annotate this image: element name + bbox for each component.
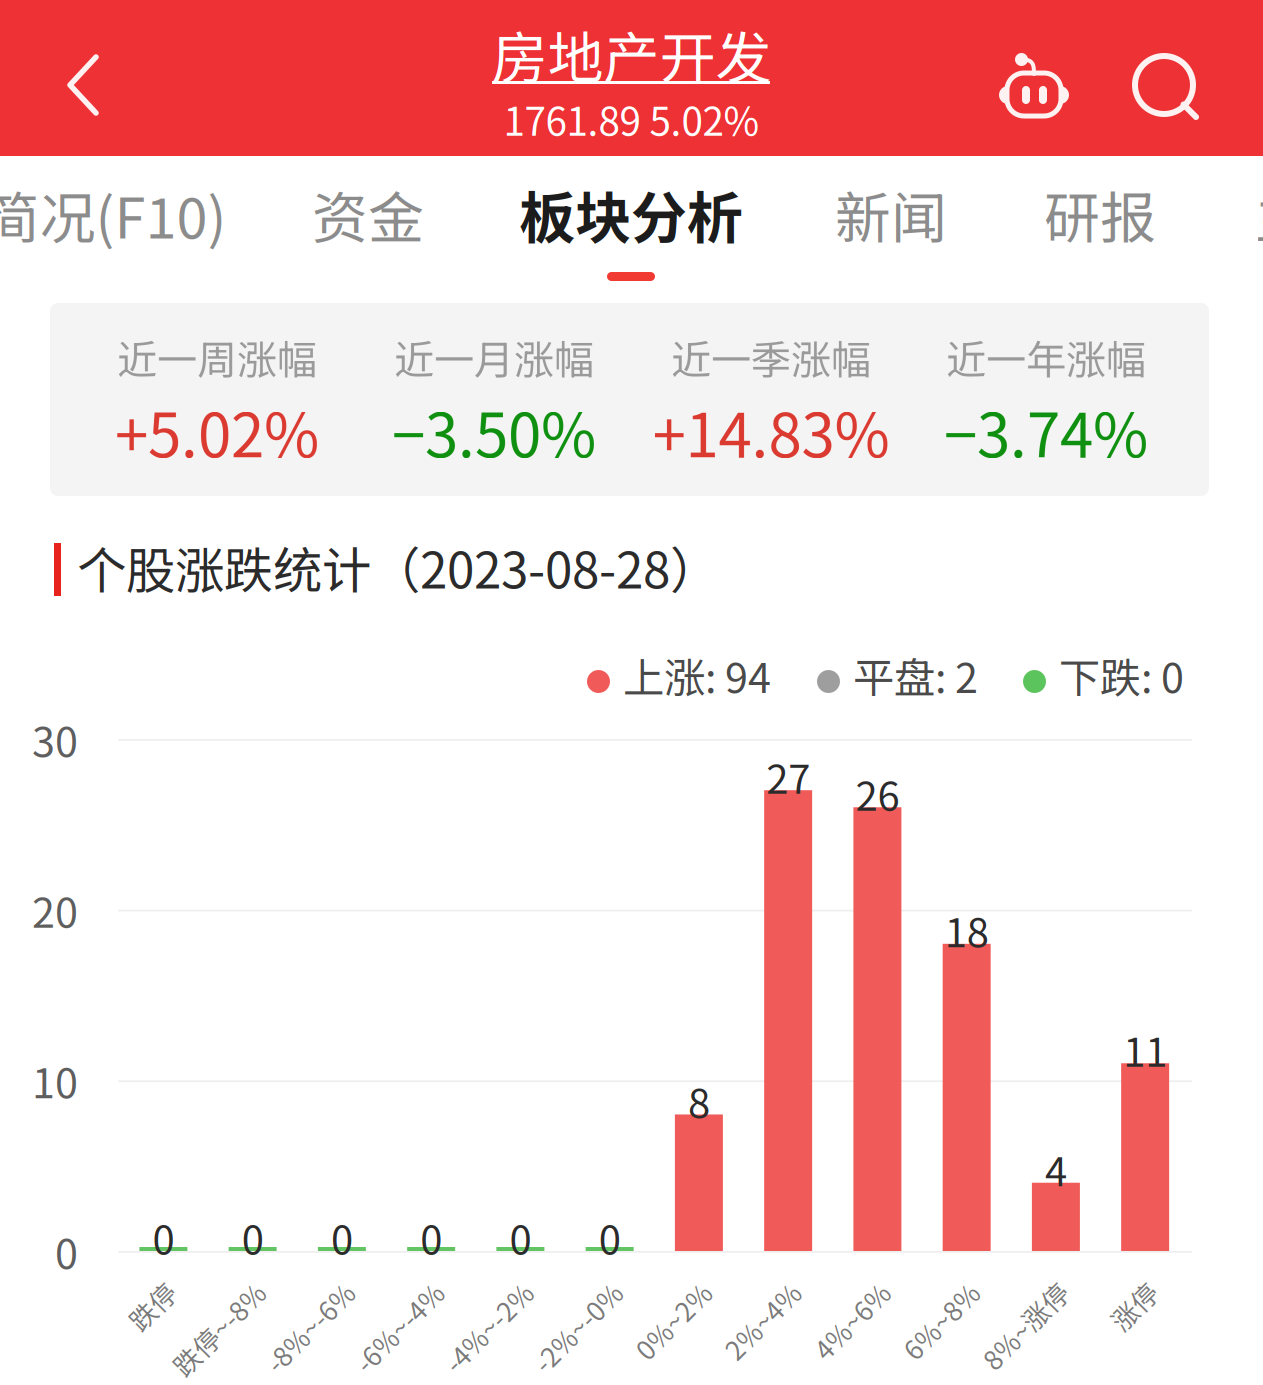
staticText: 0 [509, 1208, 531, 1266]
staticText: -4%~-2% [405, 1272, 518, 1310]
staticText: 近一周涨幅 [117, 328, 317, 386]
staticText: 10 [32, 1050, 78, 1110]
staticText: 下跌: 0 [1059, 645, 1184, 705]
button[interactable]: 简况(F10) [0, 156, 250, 301]
staticText: 上涨: 94 [623, 645, 771, 705]
button[interactable]: 主 [1198, 156, 1263, 301]
staticText: 30 [32, 709, 78, 769]
staticText: 资金 [312, 173, 424, 255]
staticText: 近一年涨幅 [946, 328, 1146, 386]
staticText: 0 [152, 1208, 174, 1266]
staticText: 主 [1255, 173, 1263, 255]
staticText: 6%~8% [870, 1272, 965, 1310]
staticText: 2%~4% [691, 1272, 786, 1310]
staticText: 4%~6% [780, 1272, 875, 1310]
staticText: 0%~2% [602, 1272, 697, 1310]
staticText: −3.74% [944, 388, 1148, 474]
staticText: 27 [766, 747, 810, 805]
staticText: 近一月涨幅 [394, 328, 594, 386]
button[interactable]: Search [1135, 56, 1199, 120]
staticText: 8%~涨停 [945, 1272, 1054, 1310]
staticText: 板块分析 [519, 173, 743, 255]
staticText: 房地产开发 [491, 13, 771, 95]
staticText: -2%~-0% [495, 1272, 608, 1310]
button[interactable]: 板块分析 [471, 156, 791, 301]
staticText: 20 [32, 880, 78, 940]
staticText: 1761.89 5.02% [503, 91, 759, 147]
staticText: 0 [331, 1208, 353, 1266]
staticText: 4 [1045, 1140, 1067, 1198]
staticText: 近一季涨幅 [671, 328, 871, 386]
staticText: 0 [55, 1221, 78, 1281]
staticText: 平盘: 2 [853, 645, 978, 705]
staticText: 新闻 [835, 173, 947, 255]
staticText: −3.50% [392, 388, 596, 474]
staticText: 11 [1123, 1020, 1167, 1078]
button[interactable]: Back [20, 22, 140, 152]
staticText: 0 [242, 1208, 264, 1266]
button[interactable]: 资金 [263, 156, 473, 301]
staticText: 跌停 [107, 1272, 161, 1310]
staticText: -8%~-6% [227, 1272, 340, 1310]
button[interactable]: 新闻 [786, 156, 996, 301]
staticText: 0 [420, 1208, 442, 1266]
staticText: +14.83% [652, 388, 889, 474]
button[interactable]: 研报 [995, 156, 1205, 301]
staticText: -6%~-4% [316, 1272, 429, 1310]
staticText: 研报 [1044, 173, 1156, 255]
staticText: 8 [688, 1071, 710, 1129]
staticText: +5.02% [115, 388, 319, 474]
staticText: 涨停 [1089, 1272, 1143, 1310]
staticText: 0 [599, 1208, 621, 1266]
staticText: 个股涨跌统计（2023-08-28） [77, 531, 719, 603]
staticText: 简况(F10) [0, 173, 226, 255]
staticText: 26 [855, 764, 899, 822]
button[interactable]: AI assistant [999, 48, 1069, 120]
staticText: 18 [945, 901, 989, 959]
staticText: 跌停~-8% [133, 1272, 251, 1310]
